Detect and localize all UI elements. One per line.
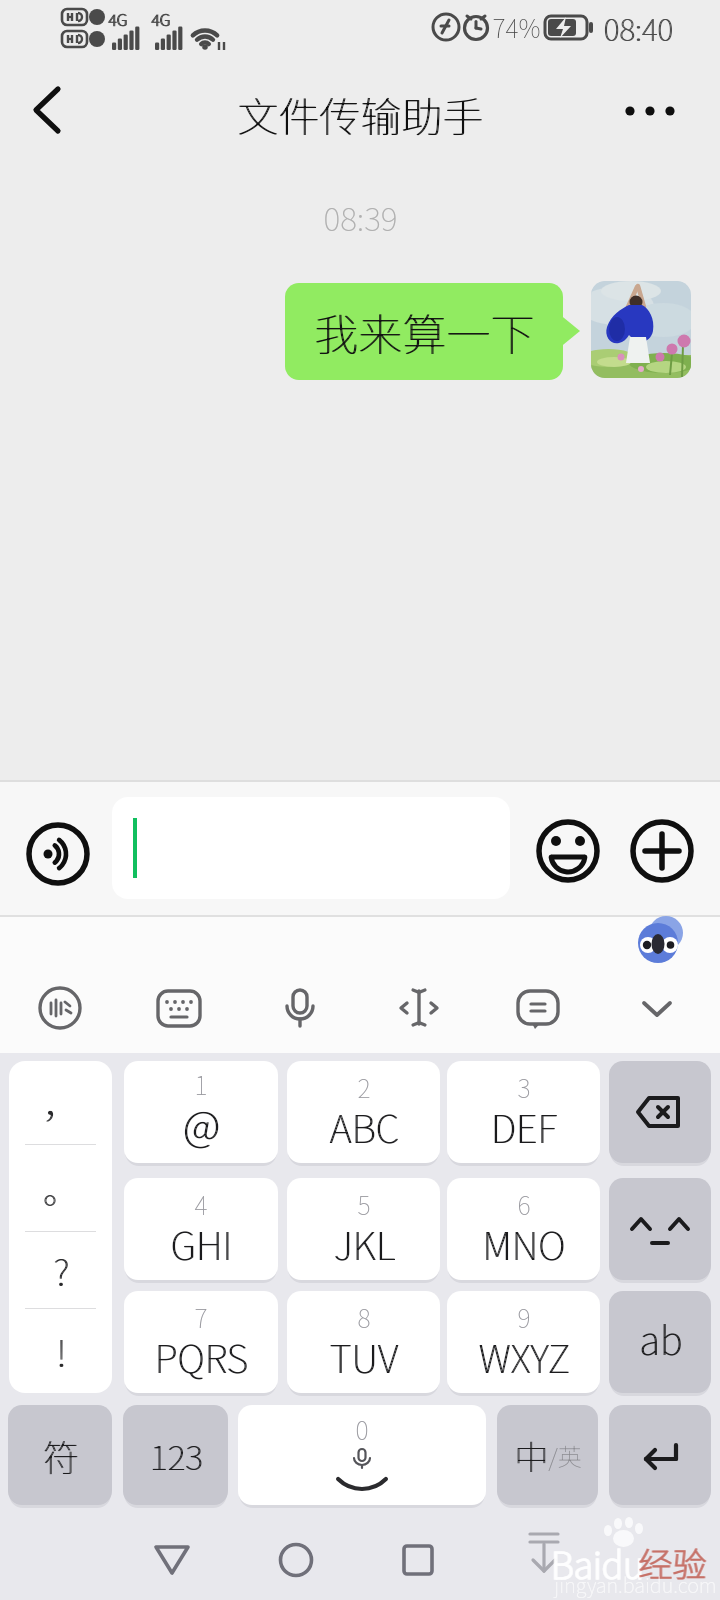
staticText: /英 (548, 1438, 582, 1473)
button[interactable] (112, 797, 510, 899)
staticText: JKL (333, 1216, 395, 1271)
button[interactable] (591, 281, 691, 378)
staticText: 08:39 (323, 194, 398, 240)
staticText: TUV (329, 1329, 398, 1384)
staticText: 08:40 (604, 6, 674, 49)
staticText: WXYZ (478, 1329, 570, 1384)
button[interactable]: 9 (447, 1291, 600, 1393)
button[interactable] (612, 80, 688, 140)
staticText: MNO (482, 1216, 565, 1271)
staticText: jingyan.baidu.com (554, 1570, 717, 1599)
staticText: ! (56, 1325, 66, 1377)
button[interactable]: 8 (287, 1291, 440, 1393)
button[interactable]: 符 (8, 1405, 112, 1505)
staticText: TUV (330, 1329, 399, 1384)
staticText: 5 (357, 1186, 371, 1222)
staticText: Baidu (550, 1537, 644, 1589)
staticText: 中 (515, 1431, 549, 1480)
staticText: 经验 (638, 1538, 706, 1587)
staticText: 。 (42, 1162, 79, 1214)
button[interactable] (270, 978, 330, 1038)
staticText: ? (54, 1244, 70, 1296)
staticText: @ (182, 1093, 220, 1154)
staticText: 2 (357, 1069, 371, 1105)
staticText: 符 (42, 1429, 79, 1481)
staticText: PQRS (154, 1329, 248, 1384)
staticText: 6 (517, 1186, 531, 1222)
button[interactable] (609, 1061, 711, 1163)
button[interactable]: ! (9, 1308, 112, 1393)
staticText: 我来算一下 (314, 300, 534, 364)
button[interactable] (628, 817, 696, 885)
staticText: ABC (329, 1099, 399, 1154)
staticText: ! (57, 1325, 67, 1377)
button[interactable]: 123 (123, 1405, 228, 1505)
button[interactable]: 1 (124, 1061, 278, 1163)
button[interactable]: 0 (238, 1405, 486, 1505)
staticText: 。 (43, 1162, 80, 1214)
button[interactable] (140, 1528, 204, 1592)
staticText: ? (53, 1244, 69, 1296)
button[interactable] (389, 978, 449, 1038)
button[interactable]: 3 (447, 1061, 600, 1163)
button[interactable] (609, 1405, 711, 1505)
staticText: 3 (517, 1069, 531, 1105)
button[interactable]: 。 (9, 1144, 112, 1231)
staticText: ab (640, 1311, 683, 1366)
staticText: WXYZ (479, 1329, 571, 1384)
button[interactable] (264, 1528, 328, 1592)
staticText: 4G (152, 7, 171, 30)
staticText: 123 (150, 1431, 204, 1480)
staticText: GHI (170, 1216, 232, 1271)
button[interactable]: ? (9, 1231, 112, 1308)
staticText: 4 (194, 1186, 208, 1222)
button[interactable]: ab (609, 1291, 711, 1393)
button[interactable]: 4 (124, 1178, 278, 1280)
staticText: 7 (194, 1299, 208, 1335)
button[interactable]: 6 (447, 1178, 600, 1280)
staticText: 经验 (639, 1538, 707, 1587)
button[interactable] (386, 1528, 450, 1592)
staticText: ABC (330, 1099, 400, 1154)
staticText: 4G (109, 7, 128, 30)
staticText: ab (639, 1311, 682, 1366)
staticText: 文件传输助手 (237, 84, 483, 136)
button[interactable] (149, 978, 209, 1038)
button[interactable] (534, 817, 602, 885)
staticText: 4G (151, 7, 170, 30)
staticText: @ (183, 1093, 221, 1154)
button[interactable]: 7 (124, 1291, 278, 1393)
staticText: DEF (490, 1099, 557, 1154)
button[interactable]: 5 (287, 1178, 440, 1280)
button[interactable] (30, 978, 90, 1038)
staticText: 符 (43, 1429, 80, 1481)
button[interactable] (24, 820, 92, 888)
staticText: 文件传输助手 (238, 84, 484, 136)
button[interactable] (627, 978, 687, 1038)
button[interactable]: 我来算一下 (285, 283, 563, 380)
staticText: 中 (514, 1431, 548, 1480)
staticText: DEF (491, 1099, 558, 1154)
staticText: 9 (517, 1299, 531, 1335)
button[interactable] (508, 978, 568, 1038)
button[interactable] (16, 75, 86, 145)
button[interactable]: 中 (497, 1405, 598, 1505)
staticText: 74% (492, 9, 541, 45)
button[interactable] (609, 1178, 711, 1280)
button[interactable]: ， (9, 1061, 112, 1144)
staticText: 8 (357, 1299, 371, 1335)
staticText: 08:40 (603, 6, 673, 49)
staticText: ， (43, 1077, 80, 1129)
staticText: PQRS (155, 1329, 249, 1384)
staticText: MNO (483, 1216, 566, 1271)
staticText: 我来算一下 (315, 300, 535, 364)
staticText: 123 (149, 1431, 203, 1480)
staticText: 1 (194, 1066, 208, 1102)
staticText: JKL (334, 1216, 396, 1271)
button[interactable]: 2 (287, 1061, 440, 1163)
button[interactable] (630, 915, 688, 970)
staticText: Baidu (551, 1537, 645, 1589)
staticText: ， (42, 1077, 79, 1129)
staticText: 4G (108, 7, 127, 30)
staticText: 0 (238, 1411, 486, 1447)
